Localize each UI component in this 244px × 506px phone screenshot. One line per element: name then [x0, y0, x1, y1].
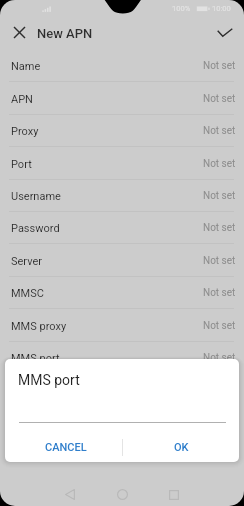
button[interactable]: Close [6, 19, 33, 46]
button[interactable]: MMS proxy [0, 310, 244, 342]
staticText: Not set [203, 60, 236, 72]
staticText: Name [11, 60, 41, 73]
staticText: Port [11, 158, 32, 171]
button[interactable]: Port [0, 148, 244, 180]
button[interactable]: CANCEL [7, 431, 124, 462]
staticText: Password [11, 222, 60, 235]
button[interactable]: MMS port [0, 342, 244, 374]
staticText: Username [11, 190, 61, 203]
button[interactable]: Password [0, 212, 244, 244]
staticText: Not set [203, 158, 236, 170]
staticText: CANCEL [45, 441, 87, 454]
staticText: MMS proxy [11, 320, 67, 333]
button[interactable]: Home [107, 479, 137, 506]
button[interactable]: Server [0, 245, 244, 277]
staticText: MNC [11, 417, 36, 430]
staticText: Not set [203, 352, 236, 364]
button[interactable]: Proxy [0, 115, 244, 147]
staticText: MMSC [11, 287, 44, 300]
staticText: Not set [203, 320, 236, 332]
staticText: OK [174, 441, 189, 454]
staticText: MMS port [11, 352, 60, 365]
button[interactable]: MMSC [0, 277, 244, 309]
staticText: Not set [203, 287, 236, 299]
staticText: MMS port [18, 372, 80, 388]
button[interactable]: Save [211, 19, 238, 46]
staticText: Proxy [11, 125, 39, 138]
button[interactable]: APN [0, 83, 244, 115]
staticText: APN [11, 93, 33, 106]
button[interactable]: OK [123, 431, 239, 462]
staticText: Not set [203, 417, 236, 429]
staticText: Not set [203, 190, 236, 202]
button[interactable]: Recents [159, 480, 189, 506]
staticText: Server [11, 255, 43, 268]
staticText: 10:00 [212, 4, 231, 13]
staticText: Not set [203, 222, 236, 234]
button[interactable]: MNC [0, 407, 244, 439]
button[interactable]: Back [55, 479, 85, 506]
staticText: Not set [203, 255, 236, 267]
staticText: New APN [37, 26, 93, 41]
staticText: Not set [203, 93, 236, 105]
button[interactable]: Name [0, 50, 244, 82]
button[interactable]: MCC [0, 375, 244, 407]
staticText: Not set [203, 125, 236, 137]
button[interactable]: Username [0, 180, 244, 212]
staticText: 100% [172, 4, 191, 13]
